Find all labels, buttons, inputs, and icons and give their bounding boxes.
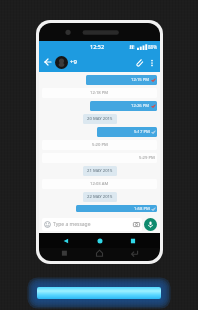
staticText: 12:26 PM <box>131 103 150 109</box>
staticText: 22 MAY 2015 <box>87 194 113 200</box>
staticText: 5:20 PM <box>92 142 108 148</box>
button[interactable]: 5:20 PM <box>42 140 157 150</box>
button[interactable]: Attach <box>132 55 146 69</box>
staticText: 12:52 <box>90 43 105 50</box>
staticText: 5:29 PM <box>139 155 155 161</box>
button[interactable]: 1:58 PM <box>76 205 157 212</box>
staticText: Type a message <box>53 221 91 228</box>
button[interactable]: 5:17 PM <box>97 127 157 137</box>
button[interactable]: More options <box>146 57 157 68</box>
button[interactable]: 12:03 AM <box>42 179 157 189</box>
button[interactable]: Back <box>59 234 73 248</box>
staticText: 12:03 AM <box>90 181 109 187</box>
button[interactable]: 12:18 PM <box>42 88 157 98</box>
staticText: +9 <box>70 58 77 66</box>
button[interactable]: Emoji <box>42 218 142 231</box>
staticText: 1:58 PM <box>134 206 150 212</box>
staticText: 5:17 PM <box>134 129 150 135</box>
other: Emoji <box>44 221 51 228</box>
staticText: 20 MAY 2015 <box>87 116 113 122</box>
button[interactable]: Record voice message <box>144 218 157 231</box>
button[interactable]: 12:26 PM <box>90 101 157 111</box>
other: Camera <box>133 221 140 228</box>
staticText: 88% <box>148 44 157 50</box>
staticText: 12:15 PM <box>131 77 150 83</box>
button[interactable]: Back <box>42 56 54 68</box>
button[interactable]: Recent apps <box>126 234 140 248</box>
button[interactable]: Contact avatar <box>55 56 68 69</box>
staticText: 12:18 PM <box>90 90 109 96</box>
staticText: 21 MAY 2015 <box>87 168 113 174</box>
button[interactable]: 12:15 PM <box>86 75 157 85</box>
button[interactable]: Home <box>93 234 107 248</box>
button[interactable]: 5:29 PM <box>42 153 157 163</box>
